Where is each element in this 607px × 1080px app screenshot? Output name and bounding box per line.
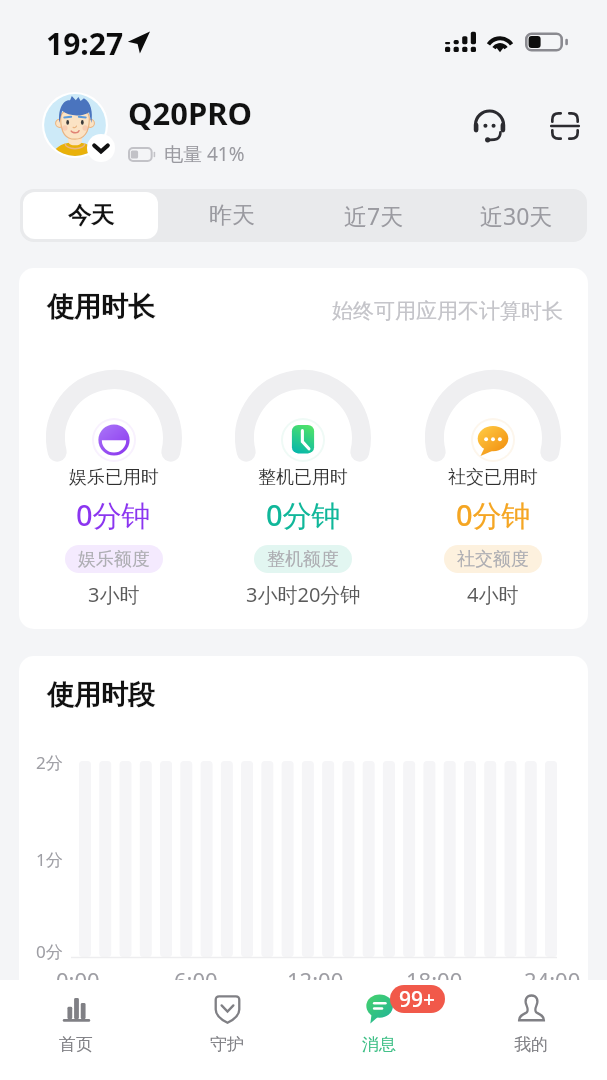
button[interactable]: Scan xyxy=(540,101,590,151)
button[interactable]: 守护 xyxy=(151,980,303,1047)
staticText: 18:00 xyxy=(406,965,463,995)
staticText: 整机额度 xyxy=(267,548,339,571)
staticText: 2分 xyxy=(36,751,63,774)
button[interactable]: 我的 xyxy=(455,980,607,1047)
button[interactable]: Switch device xyxy=(87,134,115,162)
staticText: 4小时 xyxy=(467,581,519,608)
staticText: 昨天 xyxy=(209,201,255,230)
staticText: 0分钟 xyxy=(456,495,531,535)
button[interactable]: 近30天 xyxy=(448,192,584,239)
staticText: 3小时 xyxy=(88,581,140,608)
staticText: 娱乐额度 xyxy=(78,548,150,571)
staticText: 12:00 xyxy=(287,965,344,995)
staticText: 使用时长 xyxy=(47,290,155,324)
staticText: 0分钟 xyxy=(76,495,151,535)
staticText: 社交额度 xyxy=(457,548,529,571)
button[interactable]: 昨天 xyxy=(164,192,300,239)
staticText: 始终可用应用不计算时长 xyxy=(332,298,563,324)
staticText: 0:00 xyxy=(56,965,100,995)
staticText: 0分 xyxy=(36,940,63,963)
button[interactable]: 99+ xyxy=(303,980,455,1047)
staticText: 消息 xyxy=(362,1034,396,1055)
button[interactable]: 近7天 xyxy=(306,192,442,239)
staticText: 娱乐已用时 xyxy=(69,466,159,489)
staticText: Q20PRO xyxy=(128,92,253,134)
button[interactable]: 今天 xyxy=(23,192,158,239)
button[interactable]: Customer service xyxy=(464,101,514,151)
staticText: 1分 xyxy=(36,848,63,871)
staticText: 24:00 xyxy=(524,965,581,995)
staticText: 今天 xyxy=(68,201,114,230)
staticText: 6:00 xyxy=(174,965,218,995)
staticText: 3小时20分钟 xyxy=(246,581,361,608)
staticText: 守护 xyxy=(210,1034,244,1055)
staticText: 近30天 xyxy=(480,200,553,231)
staticText: 19:27 xyxy=(46,23,124,64)
staticText: 电量 41% xyxy=(164,141,245,167)
staticText: 0分钟 xyxy=(266,495,341,535)
staticText: 我的 xyxy=(514,1034,548,1055)
staticText: 使用时段 xyxy=(47,678,155,712)
staticText: 近7天 xyxy=(344,200,404,231)
staticText: 社交已用时 xyxy=(448,466,538,489)
staticText: 整机已用时 xyxy=(258,466,348,489)
staticText: 99+ xyxy=(399,985,436,1013)
button[interactable]: 首页 xyxy=(0,980,151,1047)
staticText: 首页 xyxy=(59,1034,93,1055)
